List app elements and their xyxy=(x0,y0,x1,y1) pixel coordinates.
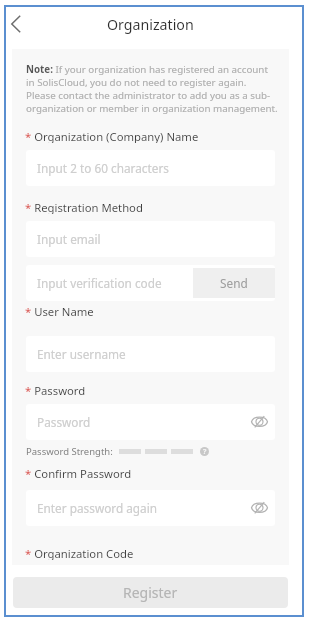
staticText: ? xyxy=(203,447,207,456)
staticText: * Password xyxy=(25,383,86,397)
staticText: * Organization Code xyxy=(25,546,134,560)
staticText: Input email xyxy=(37,231,101,247)
button[interactable]: Password strength help xyxy=(200,447,209,456)
staticText: Input 2 to 60 characters xyxy=(37,160,169,176)
button[interactable]: Enter password again xyxy=(26,490,242,526)
button[interactable]: Show password xyxy=(242,404,275,440)
button[interactable]: Send xyxy=(193,268,275,298)
staticText: Register xyxy=(123,583,178,602)
staticText: * Registration Method xyxy=(25,200,143,214)
staticText: * User Name xyxy=(25,304,94,318)
staticText: * Organization (Company) Name xyxy=(25,129,199,143)
button[interactable]: Input verification code xyxy=(26,265,193,301)
staticText: Input verification code xyxy=(37,275,162,291)
button[interactable]: Input email xyxy=(26,221,275,257)
staticText: * Confirm Password xyxy=(25,466,132,480)
button[interactable]: Show password xyxy=(242,490,275,526)
button[interactable]: Enter username xyxy=(26,336,275,372)
staticText: Organization xyxy=(107,15,194,34)
staticText: Send xyxy=(220,275,248,291)
button[interactable]: Password xyxy=(26,404,242,440)
staticText: Password Strength: xyxy=(26,445,113,458)
staticText: Note: If your organization has registere… xyxy=(26,63,278,115)
staticText: Enter username xyxy=(37,346,126,362)
staticText: Enter password again xyxy=(37,500,158,516)
button[interactable]: Back xyxy=(4,11,28,37)
staticText: Password xyxy=(37,414,91,430)
button[interactable]: Input 2 to 60 characters xyxy=(26,150,275,186)
button[interactable]: Register xyxy=(13,577,288,608)
